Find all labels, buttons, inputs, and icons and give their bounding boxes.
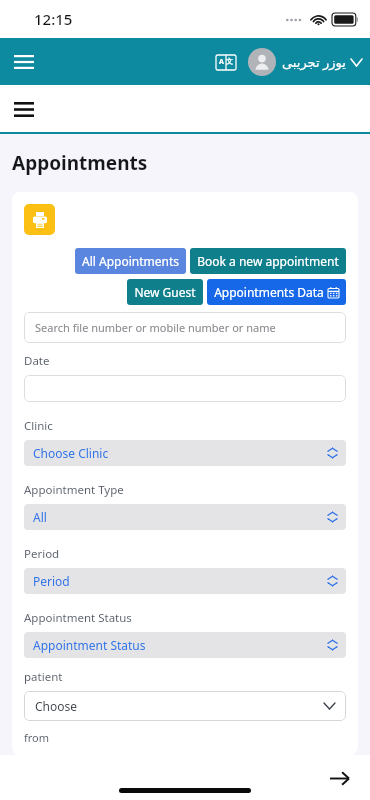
staticText: New Guest <box>134 284 196 300</box>
staticText: Appointment Status <box>24 610 132 626</box>
staticText: from <box>24 730 50 745</box>
button[interactable]: يوزر تجريبى <box>282 49 362 75</box>
staticText: Period <box>33 573 70 589</box>
button[interactable]: Book a new appointment <box>190 248 346 274</box>
button[interactable]: All <box>24 504 346 530</box>
staticText: Book a new appointment <box>197 253 339 269</box>
staticText: All <box>33 509 47 525</box>
staticText: Date <box>24 353 50 369</box>
button[interactable]: Date <box>24 375 346 402</box>
staticText: Choose <box>35 698 78 714</box>
staticText: يوزر تجريبى <box>282 53 346 71</box>
button[interactable]: Period <box>24 568 346 594</box>
staticText: All Appointments <box>82 253 179 269</box>
staticText: Choose Clinic <box>33 445 109 461</box>
button[interactable]: Choose Clinic <box>24 440 346 466</box>
staticText: 12:15 <box>34 9 73 29</box>
button[interactable]: Forward <box>322 761 356 795</box>
staticText: patient <box>24 669 63 685</box>
staticText: Appointment Status <box>33 637 146 653</box>
staticText: 文 <box>226 57 233 66</box>
button[interactable]: Appointment Status <box>24 632 346 658</box>
staticText: Appointments <box>12 150 148 176</box>
button[interactable]: All Appointments <box>75 248 186 274</box>
button[interactable]: Change language <box>212 48 240 76</box>
staticText: Period <box>24 546 60 562</box>
button[interactable]: Search file number or mobile number or n… <box>24 312 346 343</box>
button[interactable]: Choose <box>24 691 346 721</box>
staticText: A <box>219 57 224 67</box>
button[interactable]: New Guest <box>127 279 203 305</box>
button[interactable]: Open navigation menu <box>6 44 42 80</box>
button[interactable]: Print <box>24 204 55 235</box>
button[interactable]: Menu <box>6 91 42 127</box>
staticText: Search file number or mobile number or n… <box>35 320 276 335</box>
staticText: Appointment Type <box>24 482 124 498</box>
staticText: Appointments Data <box>214 284 324 300</box>
staticText: Clinic <box>24 418 53 434</box>
button[interactable]: Appointments Data <box>207 279 346 305</box>
